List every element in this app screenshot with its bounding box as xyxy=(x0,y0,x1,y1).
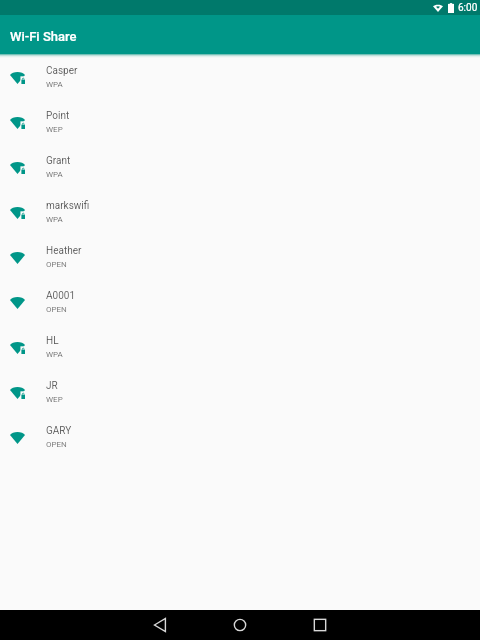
button[interactable]: Casper xyxy=(0,57,480,102)
button[interactable]: HL xyxy=(0,327,480,372)
button[interactable]: Heather xyxy=(0,237,480,282)
staticText: markswifi xyxy=(46,200,90,212)
staticText: JR xyxy=(46,380,58,392)
staticText: WPA xyxy=(46,350,63,359)
staticText: 6:00 xyxy=(458,2,478,14)
button[interactable]: markswifi xyxy=(0,192,480,237)
staticText: Point xyxy=(46,110,70,122)
button[interactable]: Point xyxy=(0,102,480,147)
button[interactable]: Back xyxy=(120,610,200,640)
staticText: OPEN xyxy=(46,305,67,314)
staticText: WPA xyxy=(46,215,63,224)
staticText: WEP xyxy=(46,125,63,134)
button[interactable]: Home xyxy=(200,610,280,640)
staticText: Wi-Fi Share xyxy=(10,29,77,44)
staticText: OPEN xyxy=(46,260,67,269)
staticText: WEP xyxy=(46,395,63,404)
button[interactable]: Grant xyxy=(0,147,480,192)
staticText: Grant xyxy=(46,155,71,167)
button[interactable]: Recent apps xyxy=(280,610,360,640)
staticText: Heather xyxy=(46,245,82,257)
staticText: OPEN xyxy=(46,440,67,449)
staticText: HL xyxy=(46,335,59,347)
staticText: GARY xyxy=(46,425,72,437)
button[interactable]: GARY xyxy=(0,417,480,462)
button[interactable]: A0001 xyxy=(0,282,480,327)
staticText: A0001 xyxy=(46,290,76,302)
staticText: WPA xyxy=(46,80,63,89)
staticText: WPA xyxy=(46,170,63,179)
staticText: Casper xyxy=(46,65,78,77)
button[interactable]: JR xyxy=(0,372,480,417)
